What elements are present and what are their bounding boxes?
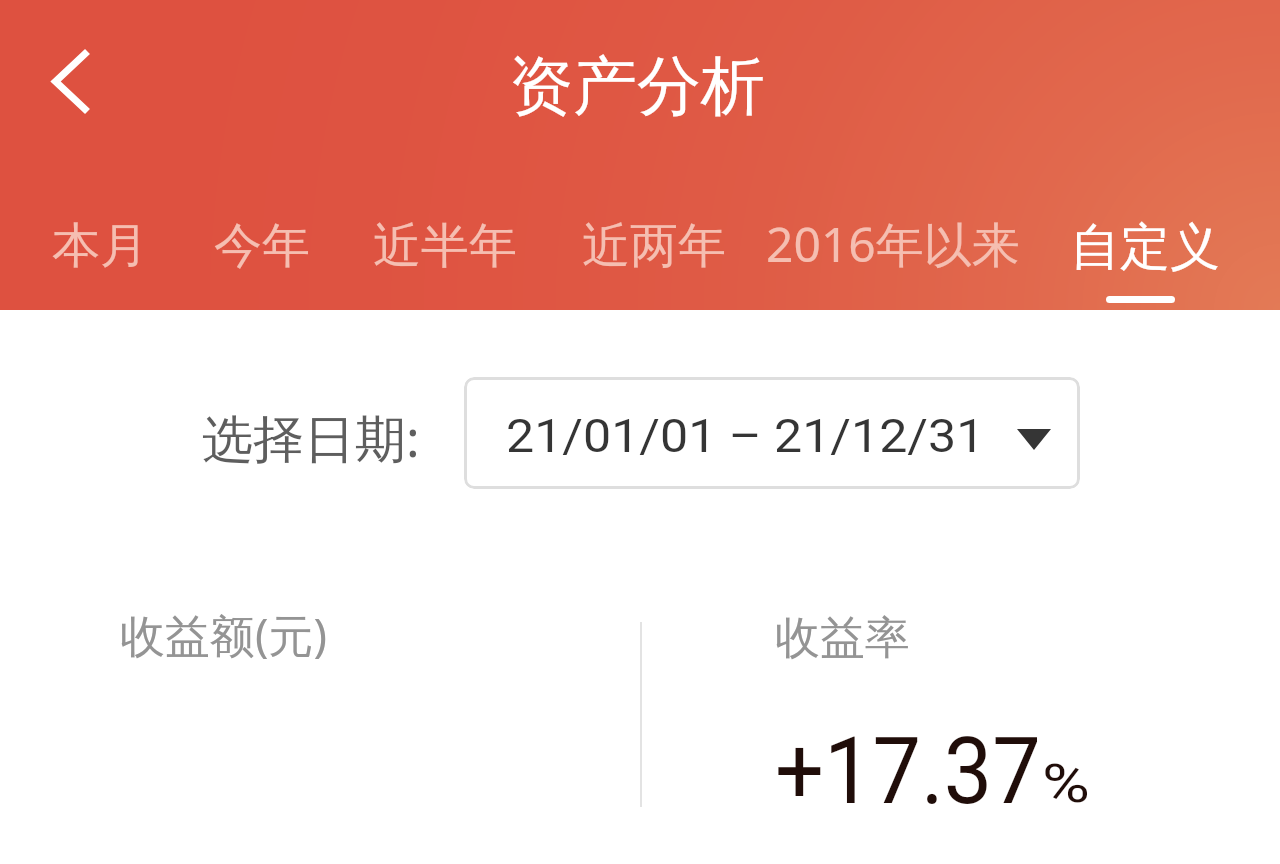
staticText: 2016年以来 bbox=[766, 211, 1020, 277]
button[interactable]: 近两年 bbox=[571, 205, 737, 310]
button[interactable]: Back bbox=[20, 30, 120, 130]
staticText: % bbox=[1042, 752, 1090, 815]
staticText: 21/01/01 – 21/12/31 bbox=[506, 408, 985, 463]
staticText: 收益率 bbox=[775, 610, 910, 667]
staticText: 收益额(元) bbox=[120, 604, 328, 665]
staticText: 自定义 bbox=[1070, 216, 1220, 279]
staticText: 选择日期: bbox=[202, 402, 420, 472]
staticText: +17.37 bbox=[775, 718, 1041, 826]
staticText: 本月 bbox=[52, 216, 148, 276]
button[interactable]: 本月 bbox=[43, 205, 157, 310]
button[interactable]: 自定义 bbox=[1060, 205, 1230, 310]
staticText: 资产分析 bbox=[509, 46, 765, 127]
staticText: 近两年 bbox=[582, 216, 726, 276]
button[interactable]: 2016年以来 bbox=[756, 205, 1030, 310]
button[interactable]: 近半年 bbox=[361, 205, 529, 310]
button[interactable]: 今年 bbox=[202, 205, 321, 310]
staticText: 近半年 bbox=[373, 216, 517, 276]
staticText: 今年 bbox=[214, 216, 310, 276]
button[interactable]: 21/01/01 – 21/12/31 bbox=[464, 377, 1080, 489]
